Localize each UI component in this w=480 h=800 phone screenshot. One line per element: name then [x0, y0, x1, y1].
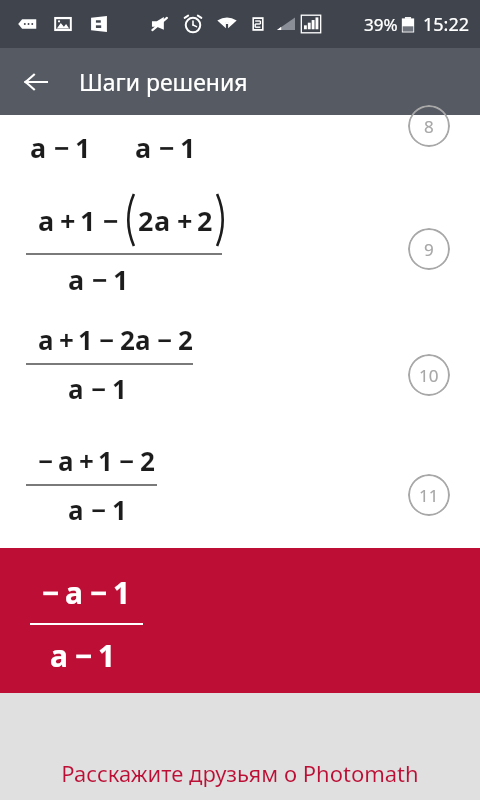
staticText: −	[75, 635, 93, 676]
staticText: 11	[419, 484, 439, 507]
staticText: −	[54, 129, 70, 166]
staticText: a	[38, 202, 55, 239]
staticText: a	[30, 129, 47, 166]
button[interactable]: Расскажите друзьям о Photomath	[0, 693, 480, 800]
staticText: 1	[75, 129, 91, 166]
staticText: +	[177, 202, 193, 239]
staticText: −	[92, 261, 108, 298]
staticText: −	[42, 572, 60, 613]
button[interactable]: Back	[12, 58, 60, 106]
staticText: 2	[120, 322, 135, 357]
staticText: 1	[180, 129, 196, 166]
staticText: a	[38, 322, 54, 357]
staticText: 10	[419, 364, 439, 387]
staticText: +	[59, 322, 74, 357]
staticText: −	[103, 202, 119, 239]
staticText: +	[79, 443, 94, 478]
staticText: a	[68, 371, 84, 406]
staticText: +	[60, 202, 76, 239]
staticText: 1	[98, 443, 113, 478]
button[interactable]: 9	[408, 228, 450, 270]
staticText: a	[135, 322, 151, 357]
staticText: a	[65, 572, 83, 613]
staticText: 1	[112, 492, 127, 527]
staticText: 1	[80, 202, 96, 239]
staticText: 2	[178, 322, 193, 357]
staticText: −	[91, 371, 107, 406]
staticText: a	[68, 261, 85, 298]
staticText: 2	[197, 202, 213, 239]
staticText: −	[90, 572, 108, 613]
staticText: a	[154, 202, 171, 239]
staticText: 8	[424, 115, 434, 138]
staticText: 1	[113, 572, 131, 613]
staticText: 1	[78, 322, 93, 357]
staticText: Расскажите друзьям о Photomath	[0, 758, 480, 788]
staticText: 2	[140, 443, 155, 478]
staticText: a	[58, 443, 74, 478]
button[interactable]: 10	[408, 354, 450, 396]
button[interactable]: −	[0, 548, 480, 693]
staticText: −	[91, 492, 107, 527]
staticText: −	[99, 322, 115, 357]
staticText: a	[50, 635, 68, 676]
staticText: Шаги решения	[79, 66, 248, 97]
staticText: 1	[112, 371, 127, 406]
staticText: −	[38, 443, 54, 478]
staticText: −	[159, 129, 175, 166]
staticText: a	[68, 492, 84, 527]
staticText: −	[119, 443, 135, 478]
staticText: a	[135, 129, 152, 166]
staticText: 39%	[364, 13, 398, 36]
button[interactable]: 8	[408, 105, 450, 147]
staticText: 2	[138, 202, 154, 239]
staticText: −	[157, 322, 173, 357]
staticText: 1	[113, 261, 129, 298]
staticText: 15:22	[423, 12, 470, 37]
button[interactable]: 11	[408, 474, 450, 516]
staticText: 1	[98, 635, 116, 676]
staticText: 9	[424, 238, 434, 261]
